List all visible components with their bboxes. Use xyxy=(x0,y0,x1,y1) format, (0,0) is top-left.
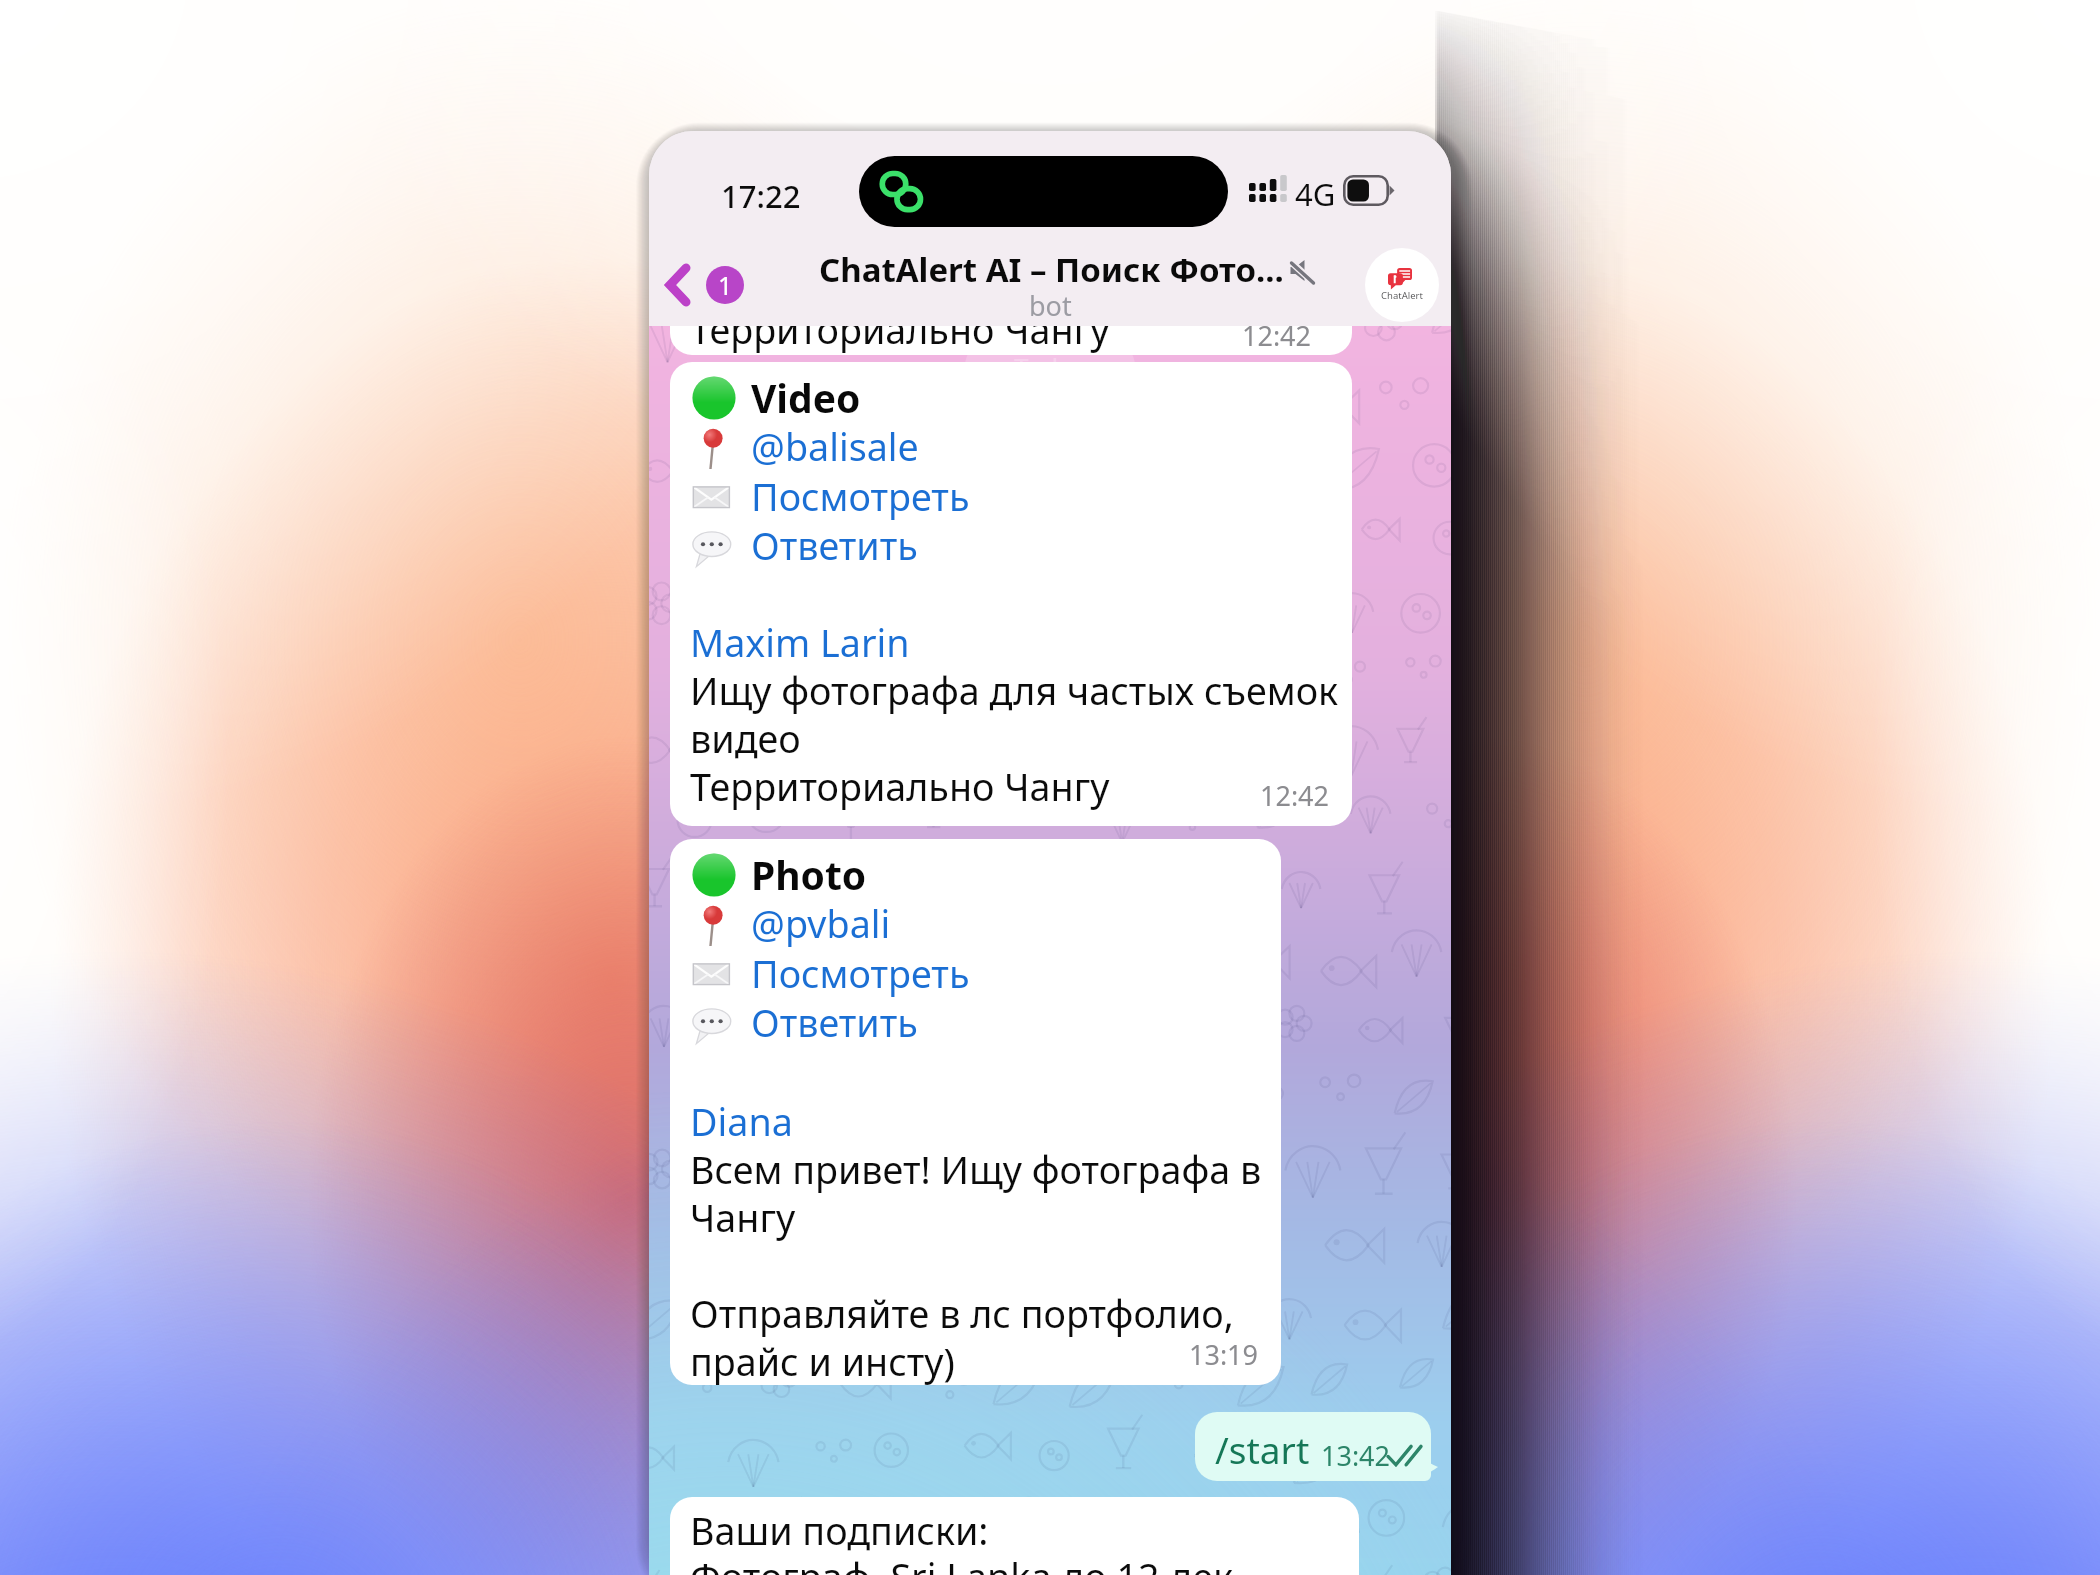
button[interactable]: Chat profile xyxy=(1365,248,1439,322)
button[interactable]: Ответить xyxy=(751,520,918,571)
staticText: Today xyxy=(1014,349,1087,384)
button[interactable]: Maxim Larin xyxy=(690,617,910,668)
button[interactable]: /start xyxy=(1195,1412,1431,1481)
staticText: ChatAlert AI – Поиск Фото... xyxy=(819,247,1284,292)
button[interactable]: Today xyxy=(965,340,1135,392)
staticText: Фотограф, Sri Lanka до 12 дек xyxy=(690,1551,1234,1575)
staticText: Территориально Чангу xyxy=(690,304,1110,355)
button[interactable]: @balisale xyxy=(751,421,919,472)
staticText: 17:22 xyxy=(721,175,801,217)
staticText: Отправляйте в лс портфолио, xyxy=(690,1288,1234,1339)
button[interactable]: Посмотреть xyxy=(751,948,970,999)
button[interactable]: Ответить xyxy=(751,997,918,1048)
staticText: Photo xyxy=(751,848,867,901)
button[interactable]: ChatAlert AI – Поиск Фото... xyxy=(809,239,1279,319)
staticText: Ваши подписки: xyxy=(690,1505,989,1556)
staticText: Video xyxy=(751,371,861,424)
button[interactable]: Посмотреть xyxy=(751,471,970,522)
staticText: 12:42 xyxy=(1260,777,1330,814)
staticText: Чангу xyxy=(690,1192,796,1243)
staticText: Территориально Чангу xyxy=(690,761,1110,812)
staticText: 12:42 xyxy=(1242,317,1312,354)
button[interactable]: Back xyxy=(657,237,757,317)
staticText: bot xyxy=(1029,287,1072,324)
staticText: прайс и инсту) xyxy=(690,1336,955,1385)
staticText: 13:19 xyxy=(1189,1336,1259,1373)
button[interactable]: Diana xyxy=(690,1096,793,1147)
button[interactable]: Ваши подписки: xyxy=(670,1497,1359,1575)
staticText: Всем привет! Ищу фотографа в xyxy=(690,1144,1262,1195)
button[interactable]: Notifications muted xyxy=(1289,258,1314,283)
staticText: видео xyxy=(690,713,801,764)
staticText: ChatAlert xyxy=(1381,289,1423,302)
staticText: /start xyxy=(1215,1424,1310,1474)
staticText: 4G xyxy=(1295,173,1336,215)
button[interactable]: Photo xyxy=(670,839,1281,1385)
staticText: Ищу фотографа для частых съемок xyxy=(690,665,1339,716)
staticText: 1 xyxy=(718,268,733,302)
button[interactable]: Video xyxy=(670,362,1352,826)
button[interactable]: @pvbali xyxy=(751,898,891,949)
staticText: 13:42 xyxy=(1321,1437,1391,1474)
